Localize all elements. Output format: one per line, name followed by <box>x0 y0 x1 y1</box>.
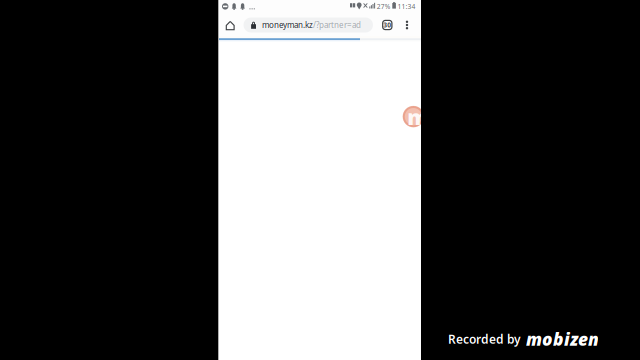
staticText: /?partner=ad <box>313 20 361 30</box>
staticText: 27% <box>377 2 391 11</box>
staticText: m <box>407 103 428 131</box>
button[interactable]: More options <box>399 14 415 36</box>
staticText: mobizen <box>526 327 599 350</box>
staticText: 11:34 <box>397 2 415 11</box>
button[interactable]: Tabs <box>376 14 398 36</box>
button[interactable]: moneyman.kz <box>243 17 373 32</box>
staticText: moneyman.kz <box>262 20 313 30</box>
staticText: Recorded by <box>448 331 521 347</box>
button[interactable]: Home <box>218 15 242 37</box>
staticText: 30 <box>383 21 391 29</box>
